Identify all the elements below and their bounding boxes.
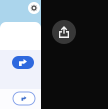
button[interactable]: Share — [52, 20, 76, 44]
button[interactable]: Settings — [28, 2, 40, 14]
button[interactable]: Share — [13, 92, 35, 105]
button[interactable]: Share — [12, 56, 34, 69]
